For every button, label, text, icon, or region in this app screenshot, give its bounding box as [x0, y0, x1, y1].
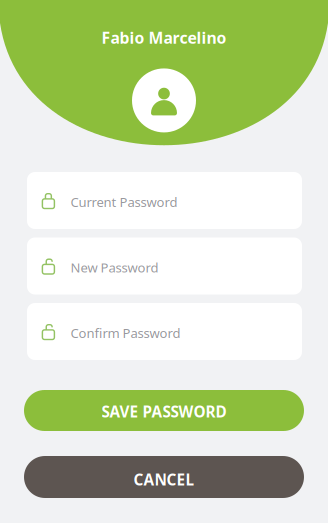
button[interactable]: SAVE PASSWORD: [24, 390, 304, 431]
staticText: SAVE PASSWORD: [101, 401, 226, 422]
button[interactable]: New Password: [27, 237, 302, 294]
button[interactable]: CANCEL: [24, 456, 304, 498]
staticText: Confirm Password: [70, 324, 180, 342]
staticText: CANCEL: [133, 469, 194, 490]
button[interactable]: Current Password: [27, 172, 302, 229]
staticText: Fabio Marcelino: [101, 27, 226, 48]
button[interactable]: Confirm Password: [27, 303, 302, 360]
staticText: New Password: [70, 259, 158, 276]
staticText: Current Password: [70, 193, 177, 211]
